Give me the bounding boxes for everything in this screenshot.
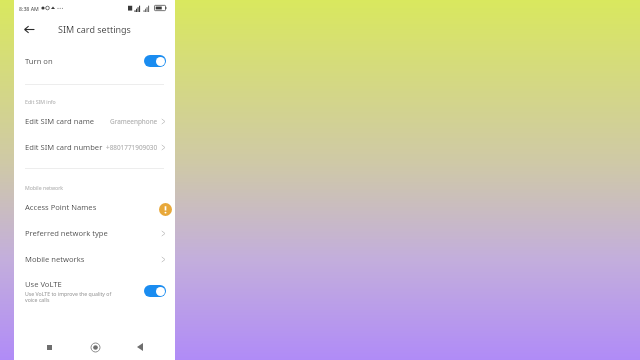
staticText: SIM card settings: [58, 23, 131, 35]
button[interactable]: Edit SIM card name: [14, 108, 175, 134]
button[interactable]: Back: [130, 337, 150, 357]
button[interactable]: Use VoLTE: [144, 285, 166, 297]
staticText: Use VoLTE to improve the quality of voic…: [25, 290, 121, 304]
button[interactable]: Preferred network type: [14, 220, 175, 246]
button[interactable]: Home: [85, 337, 105, 357]
staticText: 8:38 AM: [19, 5, 39, 12]
staticText: Use VoLTE: [25, 279, 62, 289]
staticText: Edit SIM card number: [25, 142, 103, 152]
button[interactable]: Recents: [39, 337, 59, 357]
staticText: Turn on: [25, 56, 53, 66]
button[interactable]: Use VoLTE: [14, 274, 175, 308]
button[interactable]: Edit SIM card number: [14, 134, 175, 160]
staticText: Mobile network: [25, 184, 64, 191]
button[interactable]: Access Point Names: [14, 194, 175, 220]
button[interactable]: Mobile networks: [14, 246, 175, 272]
staticText: Grameenphone: [110, 117, 158, 126]
button[interactable]: Turn on: [14, 48, 175, 74]
staticText: Edit SIM info: [25, 98, 56, 105]
other: Warning: [159, 203, 172, 216]
button[interactable]: Back: [20, 20, 38, 38]
staticText: +8801771909030: [106, 143, 158, 152]
button[interactable]: Turn on: [144, 55, 166, 67]
staticText: Access Point Names: [25, 202, 97, 212]
staticText: Edit SIM card name: [25, 116, 95, 126]
staticText: Mobile networks: [25, 254, 85, 264]
staticText: Preferred network type: [25, 228, 108, 238]
